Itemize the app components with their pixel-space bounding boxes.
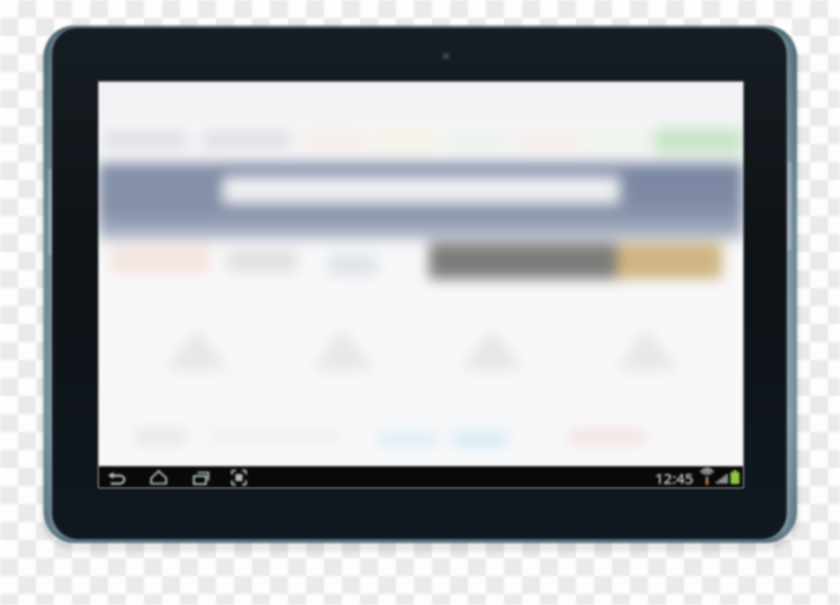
button[interactable]: Android tablet device showing a web brow… [0,0,840,605]
